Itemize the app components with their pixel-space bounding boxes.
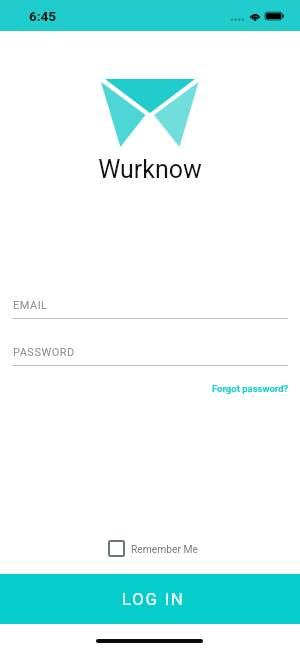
- staticText: LOG IN: [122, 590, 185, 609]
- button[interactable]: EMAIL: [0, 299, 300, 319]
- button[interactable]: Remember Me: [108, 534, 199, 563]
- button[interactable]: LOG IN: [0, 574, 300, 624]
- staticText: Wurknow: [98, 155, 202, 184]
- staticText: PASSWORD: [13, 346, 75, 359]
- staticText: Remember Me: [131, 543, 199, 555]
- staticText: Forgot password?: [212, 383, 289, 394]
- staticText: 6:45: [29, 8, 57, 24]
- staticText: EMAIL: [13, 299, 48, 312]
- button[interactable]: Forgot password?: [201, 378, 300, 399]
- button[interactable]: PASSWORD: [0, 346, 300, 366]
- other: Status icons: [228, 10, 288, 22]
